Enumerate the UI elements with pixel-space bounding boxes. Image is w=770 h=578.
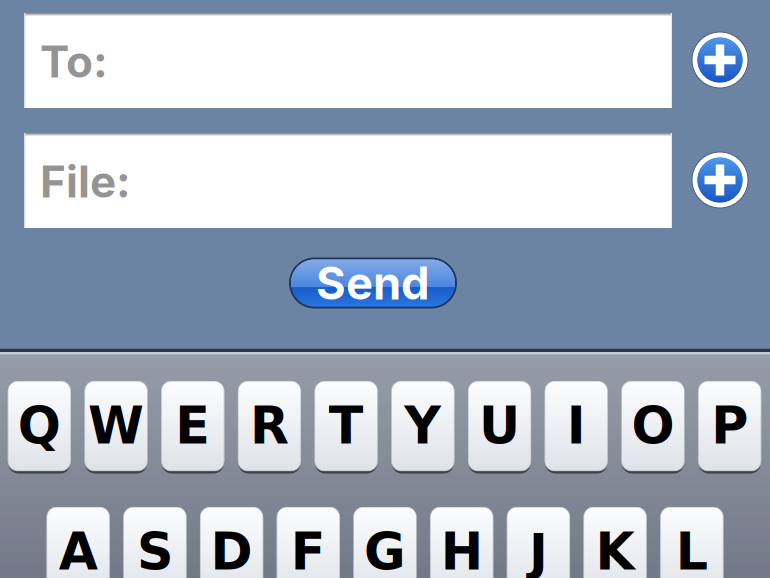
staticText: Y [404,396,441,455]
staticText: K [596,522,635,578]
button[interactable]: E [161,379,224,472]
button[interactable]: I [545,379,608,472]
staticText: I [567,396,586,455]
staticText: P [711,396,748,455]
button[interactable]: S [123,505,186,578]
button[interactable]: G [353,505,416,578]
staticText: D [211,522,253,578]
staticText: T [329,396,364,455]
button[interactable]: File: [24,133,672,228]
staticText: File: [40,155,131,208]
staticText: To: [40,35,108,88]
button[interactable]: J [507,505,570,578]
staticText: W [88,396,144,455]
button[interactable]: W [85,379,148,472]
button[interactable]: Add [689,149,751,211]
button[interactable]: R [238,379,301,472]
staticText: U [479,396,520,455]
button[interactable]: T [315,379,378,472]
staticText: F [291,522,326,578]
staticText: Q [18,396,61,455]
button[interactable]: Q [8,379,71,472]
button[interactable]: Send [289,257,457,308]
button[interactable]: Add [689,29,751,91]
button[interactable]: H [430,505,493,578]
staticText: E [175,396,210,455]
staticText: S [137,522,173,578]
button[interactable]: A [47,505,110,578]
staticText: H [441,522,483,578]
staticText: L [676,522,708,578]
button[interactable]: D [200,505,263,578]
staticText: R [250,396,289,455]
button[interactable]: P [698,379,761,472]
button[interactable]: O [621,379,684,472]
button[interactable]: L [660,505,723,578]
button[interactable]: F [277,505,340,578]
staticText: G [364,522,406,578]
button[interactable]: Y [391,379,454,472]
button[interactable]: K [584,505,647,578]
staticText: J [529,522,548,578]
button[interactable]: U [468,379,531,472]
button[interactable]: To: [24,13,672,108]
staticText: O [631,396,674,455]
staticText: A [59,522,98,578]
staticText: Send [316,256,430,310]
